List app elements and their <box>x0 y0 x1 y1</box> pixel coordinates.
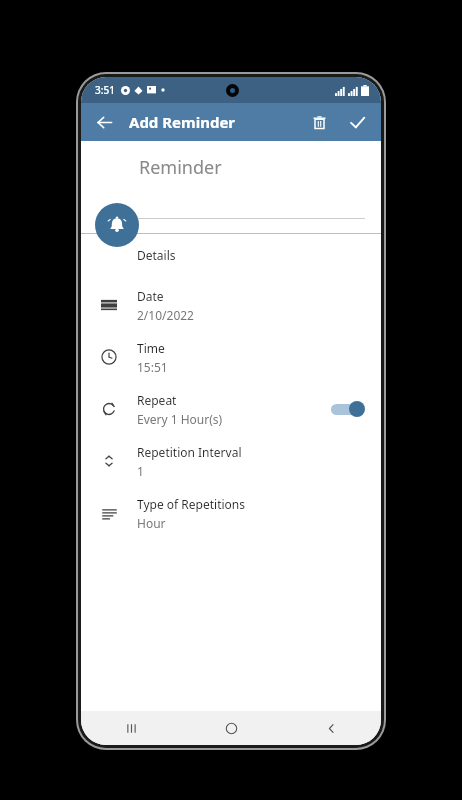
button[interactable]: Reminder type <box>95 203 139 247</box>
button[interactable]: Recent apps <box>81 711 181 745</box>
staticText: Add Reminder <box>129 112 236 132</box>
button[interactable]: Repeat toggle <box>331 398 365 420</box>
staticText: 3:51 <box>95 83 115 97</box>
staticText: 2/10/2022 <box>137 307 194 323</box>
button[interactable]: Repeat <box>81 383 381 435</box>
staticText: Time <box>137 340 165 356</box>
staticText: 1 <box>137 463 144 479</box>
button[interactable]: Date <box>81 279 381 331</box>
button[interactable]: Back <box>281 711 381 745</box>
staticText: Repetition Interval <box>137 444 242 460</box>
staticText: Repeat <box>137 392 177 408</box>
staticText: Hour <box>137 515 166 531</box>
button[interactable]: Save <box>341 106 373 138</box>
button[interactable]: Back <box>87 105 121 139</box>
staticText: Date <box>137 288 164 304</box>
staticText: Reminder <box>139 155 222 180</box>
staticText: Every 1 Hour(s) <box>137 411 223 427</box>
button[interactable]: Delete <box>303 106 335 138</box>
staticText: 15:51 <box>137 359 168 375</box>
staticText: Details <box>137 247 176 263</box>
staticText: Type of Repetitions <box>137 496 245 512</box>
button[interactable]: Repetition Interval <box>81 435 381 487</box>
button[interactable]: Type of Repetitions <box>81 487 381 539</box>
button[interactable]: Time <box>81 331 381 383</box>
button[interactable]: Home <box>181 711 281 745</box>
